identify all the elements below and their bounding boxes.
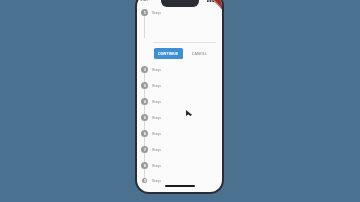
button[interactable]: 3	[137, 82, 222, 89]
staticText: 2	[144, 68, 146, 72]
staticText: Step	[152, 67, 161, 73]
button[interactable]: 4	[137, 98, 222, 105]
staticText: 7	[144, 148, 146, 152]
staticText: 5	[144, 116, 146, 120]
staticText: 4	[144, 100, 146, 104]
button[interactable]: CONTINUE	[154, 48, 183, 59]
button[interactable]: 7	[137, 146, 222, 153]
staticText: CONTINUE	[158, 51, 179, 56]
staticText: 8	[144, 164, 146, 168]
staticText: 1	[144, 11, 146, 15]
staticText: Step	[152, 10, 161, 16]
staticText: Step	[152, 115, 161, 121]
staticText: CANCEL	[192, 51, 207, 56]
staticText: 3	[144, 84, 146, 88]
staticText: Step	[152, 99, 161, 105]
button[interactable]: 6	[137, 130, 222, 137]
button[interactable]: 8	[137, 162, 222, 169]
staticText: Step	[152, 131, 161, 137]
button[interactable]: 5	[137, 114, 222, 121]
staticText: Step	[152, 163, 161, 169]
button[interactable]: 2	[137, 66, 222, 73]
staticText: 6	[144, 132, 146, 136]
staticText: Step	[152, 178, 161, 183]
button[interactable]: 9	[137, 178, 222, 183]
staticText: Step	[152, 83, 161, 89]
button[interactable]: CANCEL	[188, 48, 211, 59]
staticText: 9:41	[140, 0, 148, 2]
button[interactable]: 1	[137, 9, 222, 16]
staticText: Step	[152, 147, 161, 153]
staticText: 9	[144, 179, 146, 183]
